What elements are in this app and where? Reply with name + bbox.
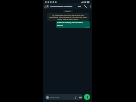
- button[interactable]: Bonjour Martin, pouvez-vous rendre: [56, 21, 90, 28]
- button[interactable]: More options: [88, 4, 92, 8]
- button[interactable]: 🔒 Messages and calls are end-to-end encr…: [47, 13, 89, 21]
- staticText: Bonjour Martin, pouvez-vous rendre: [57, 21, 89, 26]
- button[interactable]: Attach: [74, 96, 77, 99]
- button[interactable]: Camera: [79, 96, 82, 99]
- staticText: 🔒 Messages and calls are end-to-end encr…: [49, 14, 87, 20]
- button[interactable]: Voice message: [84, 94, 90, 100]
- button[interactable]: Back: [43, 5, 46, 8]
- staticText: TODAY: [65, 10, 71, 12]
- button[interactable]: Call: [83, 4, 88, 9]
- staticText: Message: [50, 96, 60, 99]
- staticText: 11:43: [85, 26, 89, 28]
- button[interactable]: Video call: [77, 4, 82, 9]
- button[interactable]: Contact photo: [46, 5, 49, 8]
- button[interactable]: Message: [45, 94, 83, 100]
- button[interactable]: TODAY: [63, 10, 73, 12]
- staticText: Marie-Claude Lapointe: [50, 5, 73, 8]
